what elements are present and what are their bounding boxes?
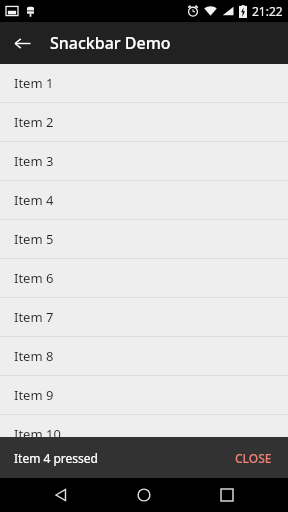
button[interactable]: Recent apps [205, 478, 249, 512]
staticText: Item 7 [14, 308, 54, 326]
staticText: Item 2 [14, 113, 54, 131]
button[interactable]: Item 5 [0, 220, 288, 258]
staticText: Item 11 [14, 457, 61, 475]
button[interactable]: Home [122, 478, 166, 512]
button[interactable]: Navigate up [6, 27, 38, 59]
button[interactable]: Item 4 [0, 181, 288, 219]
staticText: 21:22 [252, 3, 283, 19]
button[interactable]: Item 4 pressed [0, 437, 288, 478]
staticText: Item 4 [14, 191, 54, 209]
staticText: Snackbar Demo [50, 32, 171, 54]
button[interactable]: Item 7 [0, 298, 288, 336]
staticText: Item 6 [14, 269, 54, 287]
staticText: Item 4 pressed [14, 450, 99, 466]
button[interactable]: Item 1 [0, 64, 288, 102]
button[interactable]: Item 10 [0, 415, 288, 453]
staticText: Item 10 [14, 425, 61, 443]
button[interactable]: Back [39, 478, 83, 512]
staticText: CLOSE [235, 450, 272, 466]
button[interactable]: Item 8 [0, 337, 288, 375]
staticText: Item 3 [14, 152, 54, 170]
button[interactable]: Item 6 [0, 259, 288, 297]
staticText: Item 8 [14, 347, 54, 365]
button[interactable]: Item 3 [0, 142, 288, 180]
button[interactable]: Item 11 [0, 454, 288, 478]
button[interactable]: Item 9 [0, 376, 288, 414]
staticText: Item 5 [14, 230, 54, 248]
staticText: Item 1 [14, 74, 54, 92]
button[interactable]: Item 2 [0, 103, 288, 141]
button[interactable]: CLOSE [227, 444, 280, 472]
staticText: Item 9 [14, 386, 54, 404]
